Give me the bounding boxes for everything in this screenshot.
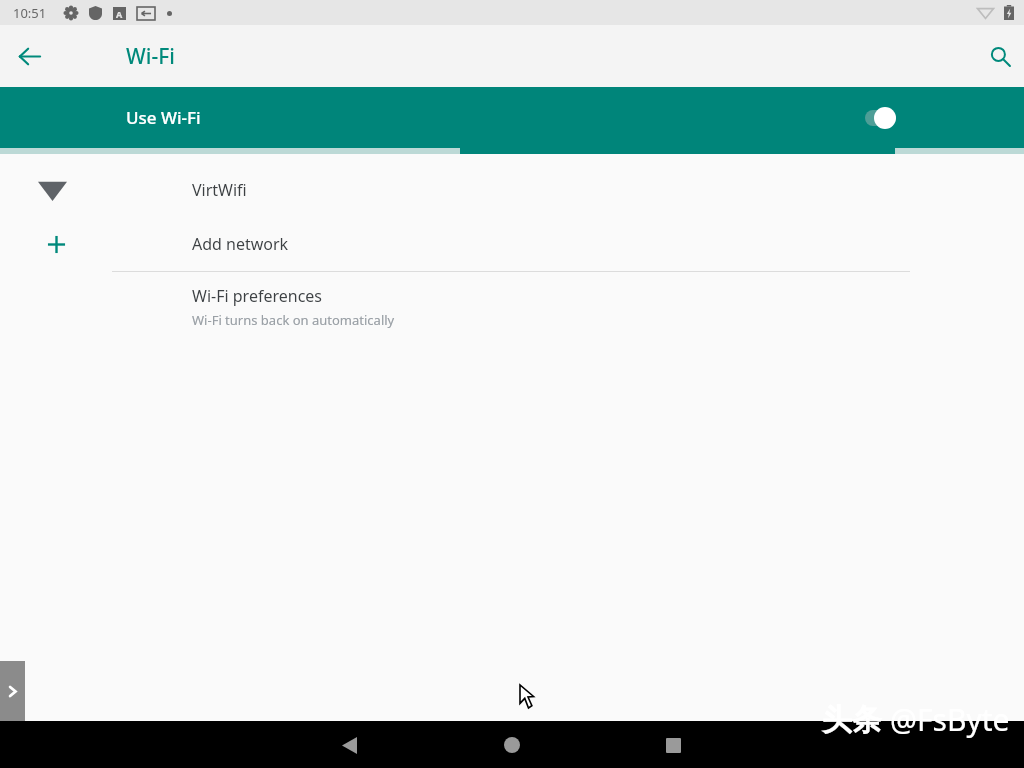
button[interactable]: Use Wi-Fi (0, 87, 1024, 148)
button[interactable]: VirtWifi (0, 163, 1024, 217)
button[interactable]: Back (329, 725, 369, 765)
button[interactable]: Expand panel (0, 661, 25, 721)
staticText: Use Wi-Fi (126, 106, 201, 129)
button[interactable]: Navigate up (5, 32, 53, 80)
staticText: Wi-Fi preferences (192, 285, 323, 307)
button[interactable]: Home (492, 725, 532, 765)
button[interactable]: Wi-Fi preferences (0, 272, 1024, 336)
staticText: VirtWifi (192, 179, 247, 201)
staticText: @FsByte (890, 699, 1010, 740)
staticText: 头条 (822, 701, 882, 739)
staticText: Wi-Fi turns back on automatically (192, 311, 395, 329)
button[interactable]: Search (976, 32, 1024, 80)
staticText: A (116, 8, 123, 20)
staticText: 10:51 (13, 4, 47, 22)
button[interactable]: Use Wi-Fi toggle (860, 100, 914, 136)
button[interactable]: Add network (0, 217, 1024, 271)
button[interactable]: Recent apps (653, 725, 693, 765)
staticText: Add network (192, 233, 289, 255)
staticText: Wi-Fi (126, 42, 175, 71)
